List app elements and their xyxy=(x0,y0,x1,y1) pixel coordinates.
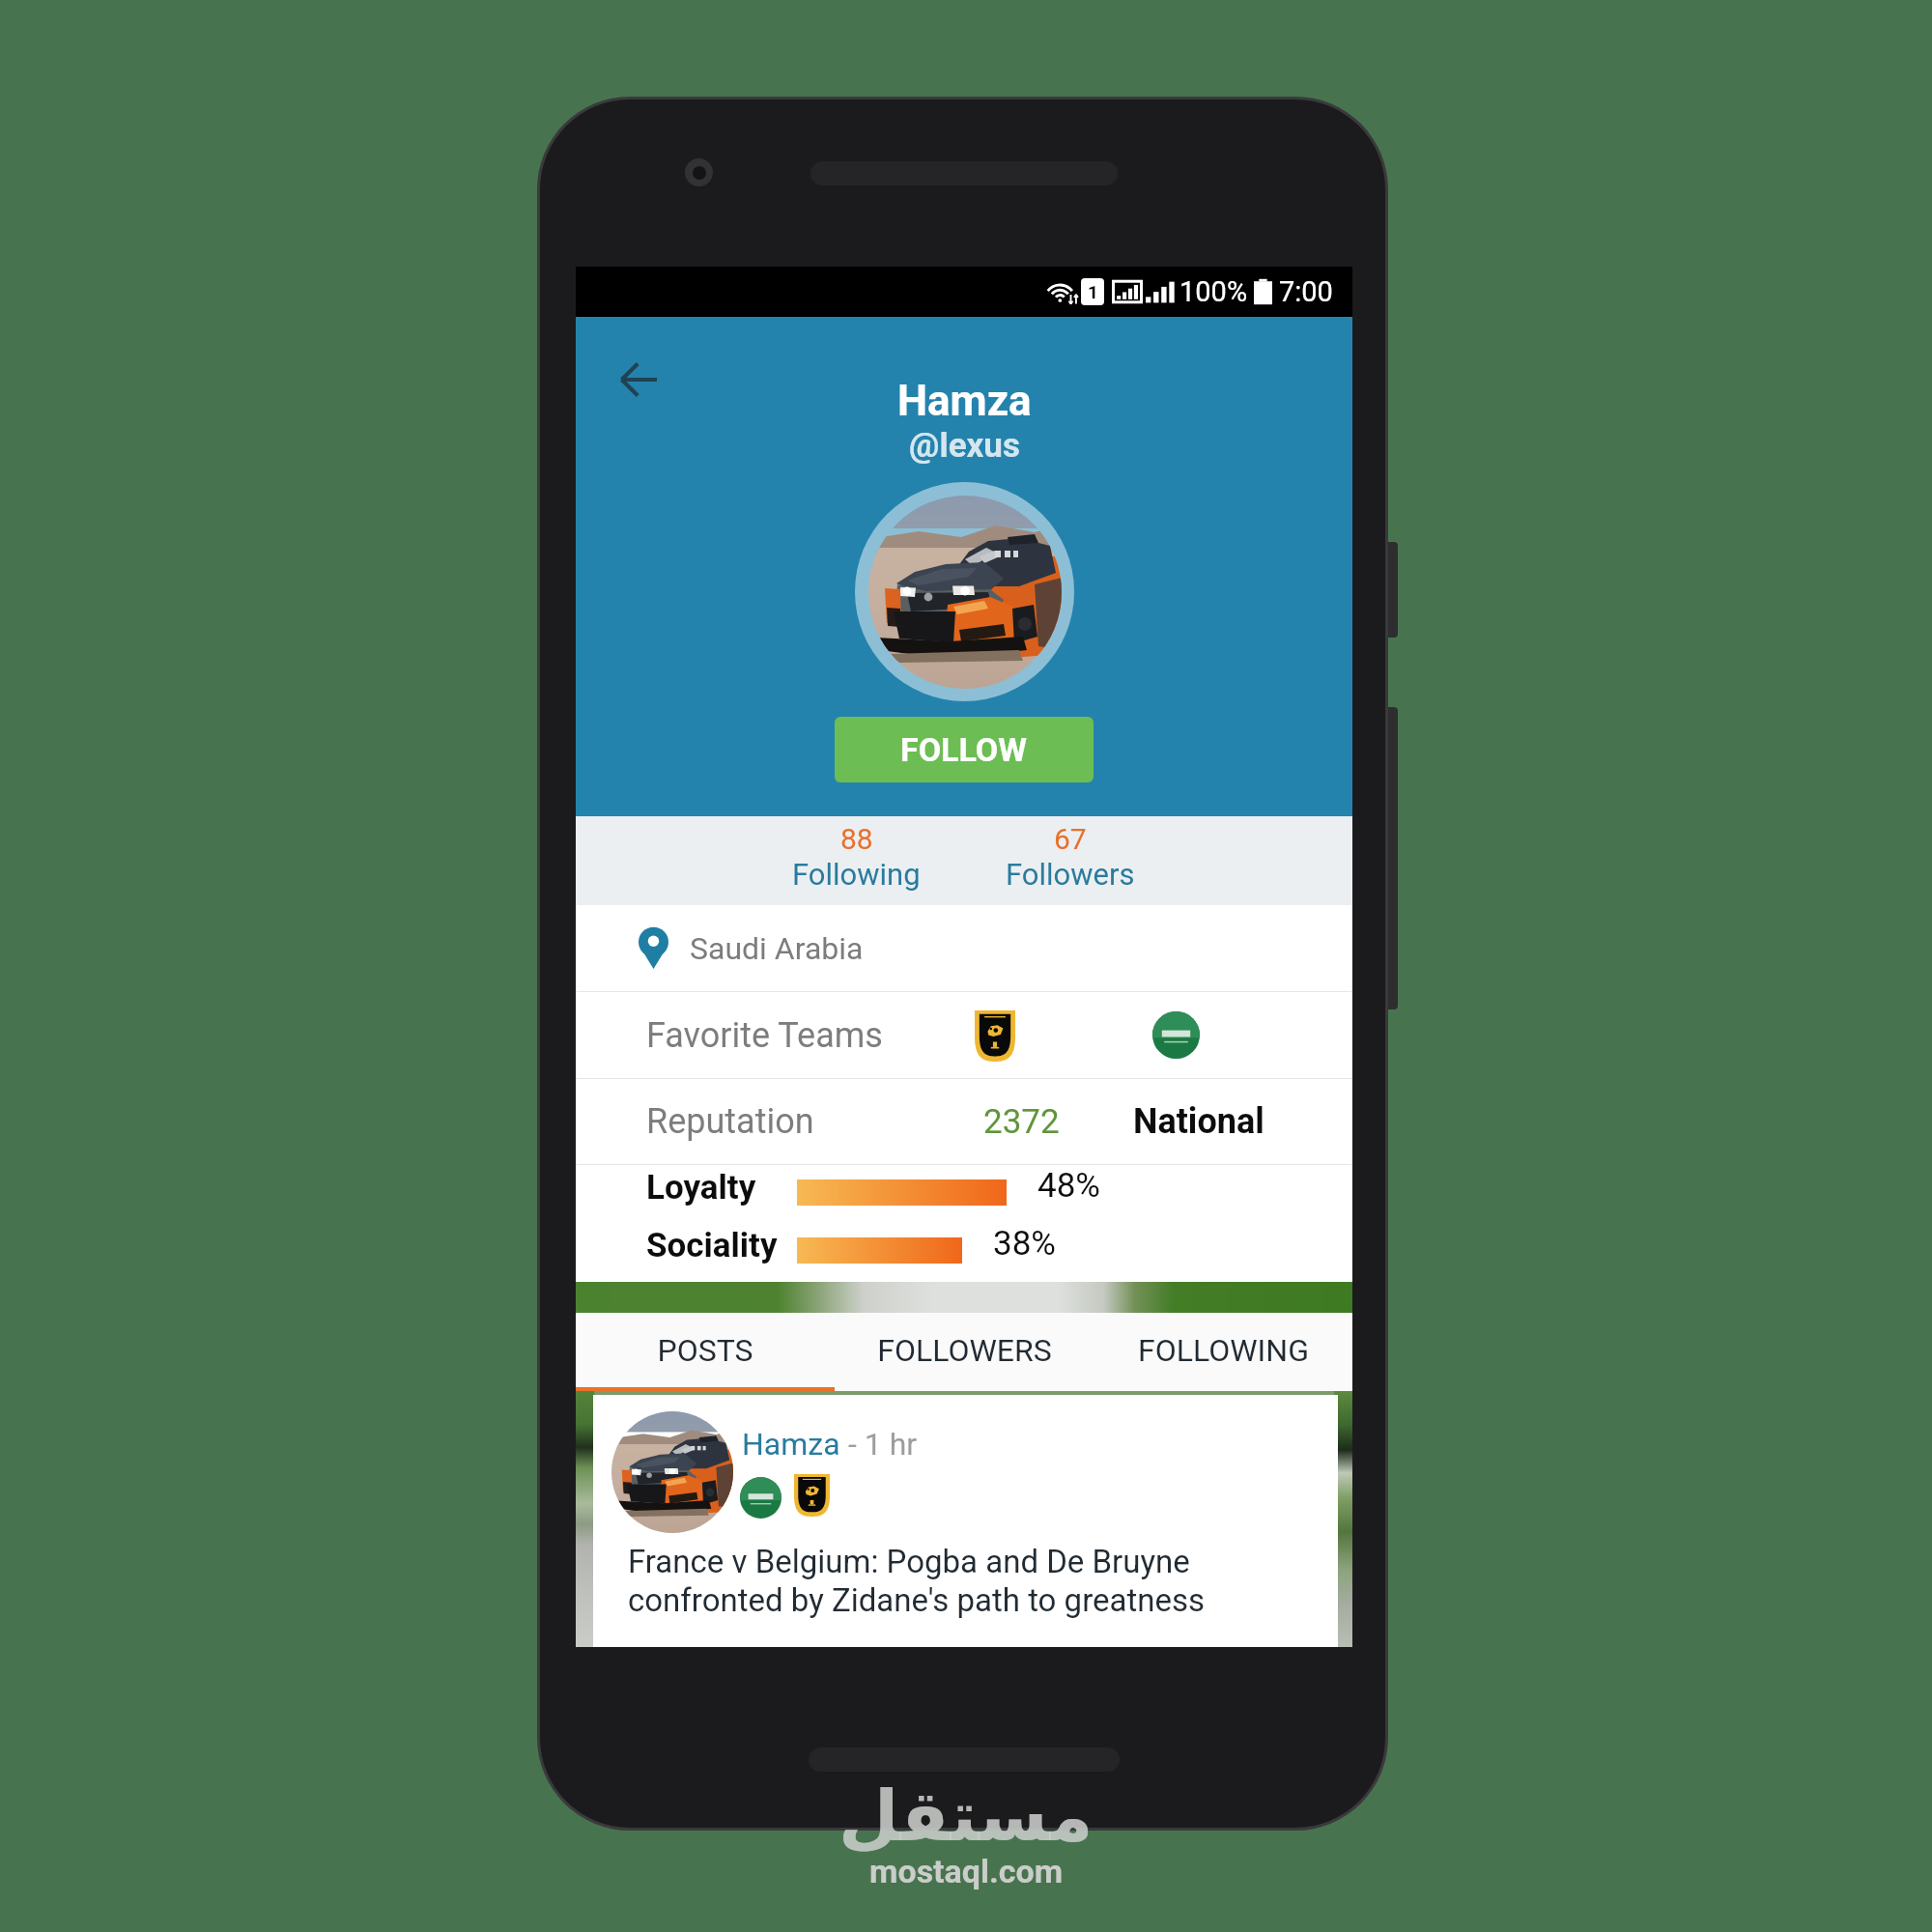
button[interactable]: Profile photo xyxy=(855,482,1074,701)
staticText: Reputation xyxy=(646,1101,814,1142)
staticText: 2372 xyxy=(983,1102,1060,1142)
staticText: مستقل xyxy=(838,1776,1094,1857)
staticText: @lexus xyxy=(909,426,1020,466)
staticText: Sociality xyxy=(646,1226,778,1265)
staticText: confronted by Zidane's path to greatness xyxy=(628,1581,1206,1619)
button[interactable]: Favorite Teams xyxy=(576,992,1352,1078)
button[interactable]: Hamza xyxy=(593,1395,1338,1647)
staticText: - 1 hr xyxy=(840,1426,918,1463)
button[interactable]: 88 xyxy=(750,816,963,905)
button[interactable]: 67 xyxy=(963,816,1177,905)
button[interactable]: Back xyxy=(601,342,676,417)
button[interactable]: Reputation xyxy=(576,1079,1352,1164)
staticText: 48% xyxy=(1037,1166,1100,1206)
staticText: Following xyxy=(792,857,921,892)
staticText: Hamza xyxy=(897,376,1032,426)
staticText: Favorite Teams xyxy=(646,1015,883,1056)
staticText: Loyalty xyxy=(646,1168,756,1207)
staticText: Followers xyxy=(1006,857,1135,892)
staticText: 7:00 xyxy=(1279,275,1333,308)
staticText: 1 xyxy=(1088,281,1098,302)
staticText: POSTS xyxy=(657,1332,753,1369)
staticText: National xyxy=(1133,1101,1264,1142)
staticText: FOLLOW xyxy=(900,730,1028,769)
button[interactable]: FOLLOWERS xyxy=(835,1313,1094,1387)
button[interactable]: POSTS xyxy=(576,1313,835,1387)
staticText: 38% xyxy=(993,1224,1056,1264)
button[interactable]: Saudi Arabia xyxy=(576,905,1352,991)
staticText: 88 xyxy=(840,822,873,856)
staticText: Saudi Arabia xyxy=(690,930,864,967)
staticText: mostaql.com xyxy=(869,1852,1064,1890)
staticText: FOLLOWING xyxy=(1138,1332,1309,1369)
button[interactable]: FOLLOW xyxy=(835,717,1094,782)
staticText: FOLLOWERS xyxy=(877,1332,1052,1369)
staticText: France v Belgium: Pogba and De Bruyne xyxy=(628,1543,1190,1580)
button[interactable]: FOLLOWING xyxy=(1094,1313,1352,1387)
staticText: Hamza xyxy=(742,1426,840,1463)
staticText: 100% xyxy=(1179,275,1248,308)
staticText: 67 xyxy=(1054,822,1087,856)
